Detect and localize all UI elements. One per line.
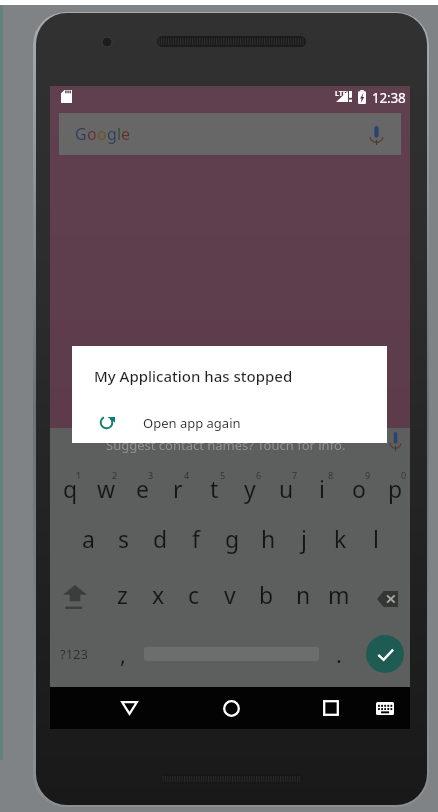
- button[interactable]: s: [106, 518, 142, 566]
- staticText: e: [121, 123, 130, 145]
- button[interactable]: x: [140, 574, 176, 622]
- staticText: r: [173, 473, 183, 504]
- button[interactable]: a: [70, 518, 106, 566]
- button[interactable]: h: [250, 518, 286, 566]
- staticText: c: [188, 579, 200, 610]
- staticText: n: [296, 579, 311, 610]
- staticText: ?123: [60, 645, 88, 663]
- staticText: s: [118, 523, 130, 554]
- button[interactable]: 3: [124, 468, 160, 516]
- staticText: Suggest contact names? Touch for info.: [106, 436, 346, 454]
- staticText: .: [336, 639, 342, 669]
- button[interactable]: 4: [160, 468, 196, 516]
- button[interactable]: 2: [88, 468, 124, 516]
- staticText: m: [328, 579, 350, 610]
- staticText: j: [301, 523, 307, 554]
- button[interactable]: G: [59, 113, 401, 155]
- staticText: LTE: [335, 89, 347, 99]
- staticText: 2: [112, 469, 118, 481]
- staticText: G: [75, 123, 87, 145]
- staticText: l: [117, 123, 121, 145]
- button[interactable]: k: [322, 518, 358, 566]
- button[interactable]: Back: [105, 687, 153, 729]
- staticText: b: [259, 579, 274, 610]
- staticText: i: [319, 473, 325, 504]
- staticText: 1: [76, 469, 82, 481]
- staticText: e: [136, 473, 149, 504]
- staticText: ,: [120, 639, 126, 669]
- staticText: o: [97, 123, 107, 145]
- staticText: x: [152, 579, 165, 610]
- button[interactable]: 8: [304, 468, 340, 516]
- staticText: o: [352, 473, 366, 504]
- button[interactable]: v: [212, 574, 248, 622]
- button[interactable]: 0: [377, 468, 413, 516]
- staticText: 8: [328, 469, 334, 481]
- button[interactable]: .: [321, 630, 357, 678]
- staticText: g: [107, 123, 117, 145]
- button[interactable]: Enter: [366, 635, 404, 673]
- button[interactable]: m: [321, 574, 357, 622]
- staticText: k: [334, 523, 347, 554]
- button[interactable]: 7: [268, 468, 304, 516]
- staticText: v: [224, 579, 236, 610]
- button[interactable]: Switch keyboard: [361, 687, 409, 729]
- staticText: o: [87, 123, 97, 145]
- button[interactable]: ,: [105, 630, 141, 678]
- staticText: g: [225, 523, 240, 554]
- staticText: 5: [220, 469, 226, 481]
- staticText: q: [63, 473, 78, 504]
- button[interactable]: 9: [341, 468, 377, 516]
- staticText: a: [82, 523, 95, 554]
- staticText: y: [244, 473, 256, 504]
- button[interactable]: n: [285, 574, 321, 622]
- staticText: u: [279, 473, 294, 504]
- button[interactable]: j: [286, 518, 322, 566]
- staticText: f: [192, 523, 200, 554]
- button[interactable]: 6: [232, 468, 268, 516]
- staticText: 6: [256, 469, 262, 481]
- staticText: 3: [148, 469, 154, 481]
- staticText: 7: [292, 469, 298, 481]
- staticText: t: [210, 473, 219, 504]
- staticText: d: [153, 523, 168, 554]
- button[interactable]: c: [176, 574, 212, 622]
- staticText: Open app again: [143, 414, 241, 432]
- button[interactable]: l: [358, 518, 394, 566]
- button[interactable]: z: [104, 574, 140, 622]
- button[interactable]: g: [214, 518, 250, 566]
- staticText: w: [97, 473, 116, 504]
- staticText: 12:38: [372, 89, 406, 107]
- button[interactable]: 1: [52, 468, 88, 516]
- staticText: 0: [401, 469, 407, 481]
- staticText: 9: [365, 469, 371, 481]
- button[interactable]: Recent apps: [307, 687, 355, 729]
- button[interactable]: ?123: [46, 630, 102, 678]
- button[interactable]: f: [178, 518, 214, 566]
- staticText: z: [117, 579, 128, 610]
- staticText: h: [261, 523, 276, 554]
- button[interactable]: Shift: [58, 574, 94, 622]
- button[interactable]: Home: [207, 687, 255, 729]
- button[interactable]: Backspace: [369, 574, 405, 622]
- staticText: p: [388, 473, 403, 504]
- staticText: 4: [184, 469, 190, 481]
- staticText: My Application has stopped: [94, 366, 293, 386]
- button[interactable]: d: [142, 518, 178, 566]
- button[interactable]: 5: [196, 468, 232, 516]
- button[interactable]: Open app again: [72, 400, 387, 445]
- button[interactable]: b: [248, 574, 284, 622]
- staticText: l: [373, 523, 379, 554]
